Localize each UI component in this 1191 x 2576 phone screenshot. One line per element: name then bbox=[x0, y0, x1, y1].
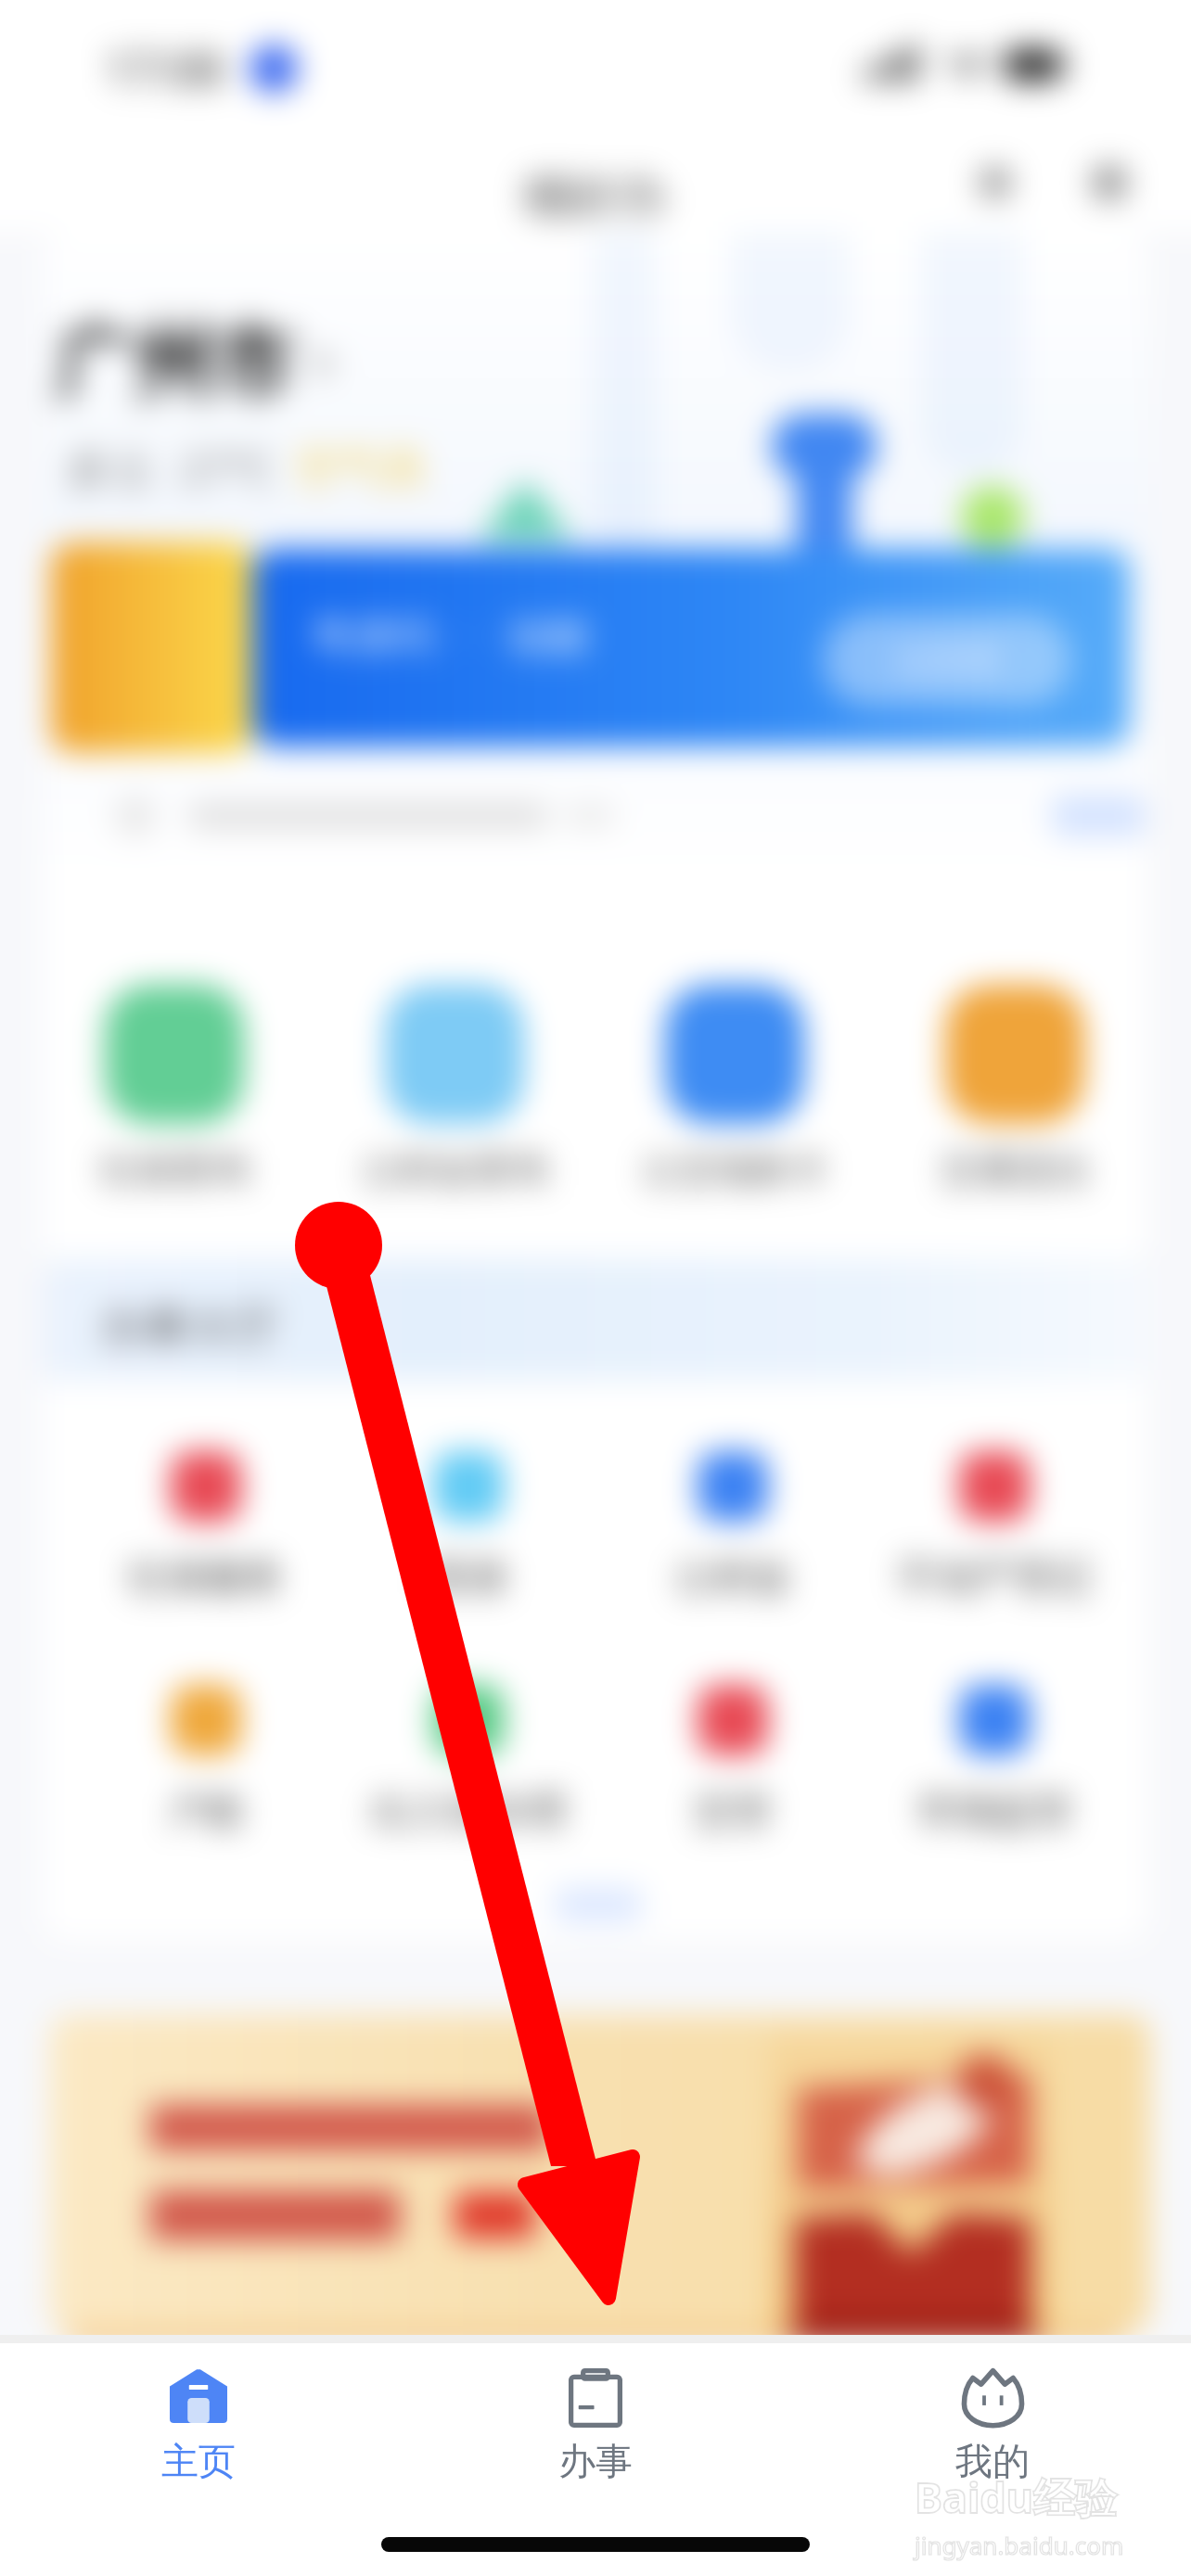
staticText: 主页 bbox=[161, 2438, 236, 2484]
button[interactable]: 搜索 bbox=[979, 166, 1012, 199]
staticText: 我的 bbox=[955, 2438, 1030, 2484]
button[interactable]: 公交地铁卡 bbox=[633, 985, 837, 1192]
staticText: 广州市 bbox=[55, 313, 294, 414]
button[interactable]: 医保 bbox=[362, 1451, 575, 1602]
button[interactable]: 不动产登记 bbox=[888, 1451, 1101, 1602]
button[interactable]: 户政 bbox=[99, 1685, 313, 1836]
button[interactable]: 出入境办理 bbox=[362, 1685, 575, 1836]
staticText: 出入境办理 bbox=[371, 1787, 566, 1836]
staticText: 办事大厅 bbox=[100, 1300, 278, 1356]
staticText: 空气良 bbox=[295, 440, 429, 496]
staticText: 交管 bbox=[694, 1787, 772, 1836]
staticText: 17:08 bbox=[105, 37, 224, 100]
staticText: 公积金查询 bbox=[362, 1146, 547, 1192]
staticText: 社保服务 bbox=[128, 1553, 284, 1602]
button[interactable] bbox=[50, 2015, 1150, 2331]
staticText: 医保 bbox=[429, 1553, 507, 1602]
staticText: 不动产登记 bbox=[897, 1553, 1092, 1602]
button[interactable]: 主页 bbox=[0, 2343, 397, 2484]
staticText: 交通违法 bbox=[941, 1146, 1089, 1192]
staticText: 公交地铁卡 bbox=[642, 1146, 827, 1192]
button[interactable]: 粤康码 · 核酸 bbox=[252, 549, 1130, 746]
staticText: 市场监管 bbox=[916, 1787, 1072, 1836]
button[interactable]: 交管 bbox=[626, 1685, 839, 1836]
staticText: jingyan.baidu.com bbox=[915, 2529, 1124, 2561]
other: 我的 bbox=[961, 2367, 1025, 2429]
button[interactable]: 公积金查询 bbox=[352, 985, 557, 1192]
staticText: 户政 bbox=[167, 1787, 245, 1836]
button[interactable]: 办事 bbox=[397, 2343, 794, 2484]
button[interactable]: 更多 bbox=[1091, 164, 1128, 201]
staticText: 办事 bbox=[558, 2438, 633, 2484]
staticText: 社保查询 bbox=[100, 1146, 249, 1192]
staticText: 粤康码 · 核酸 bbox=[312, 606, 591, 662]
staticText: 公积金 bbox=[674, 1553, 791, 1602]
staticText: 去查看 bbox=[894, 638, 1000, 682]
other: 办事 bbox=[569, 2368, 622, 2428]
staticText: 多云 27℃ bbox=[67, 438, 275, 499]
button[interactable]: 我的 bbox=[794, 2343, 1191, 2484]
button[interactable]: 公积金 bbox=[626, 1451, 839, 1602]
staticText: Baidu经验 bbox=[915, 2468, 1118, 2525]
other: 主页 bbox=[170, 2369, 227, 2427]
button[interactable]: 交通违法 bbox=[913, 985, 1117, 1192]
button[interactable]: 社保服务 bbox=[99, 1451, 313, 1602]
button[interactable]: 社保查询 bbox=[72, 985, 276, 1192]
button[interactable]: 市场监管 bbox=[888, 1685, 1101, 1836]
staticText: 穗好办 bbox=[523, 166, 668, 227]
